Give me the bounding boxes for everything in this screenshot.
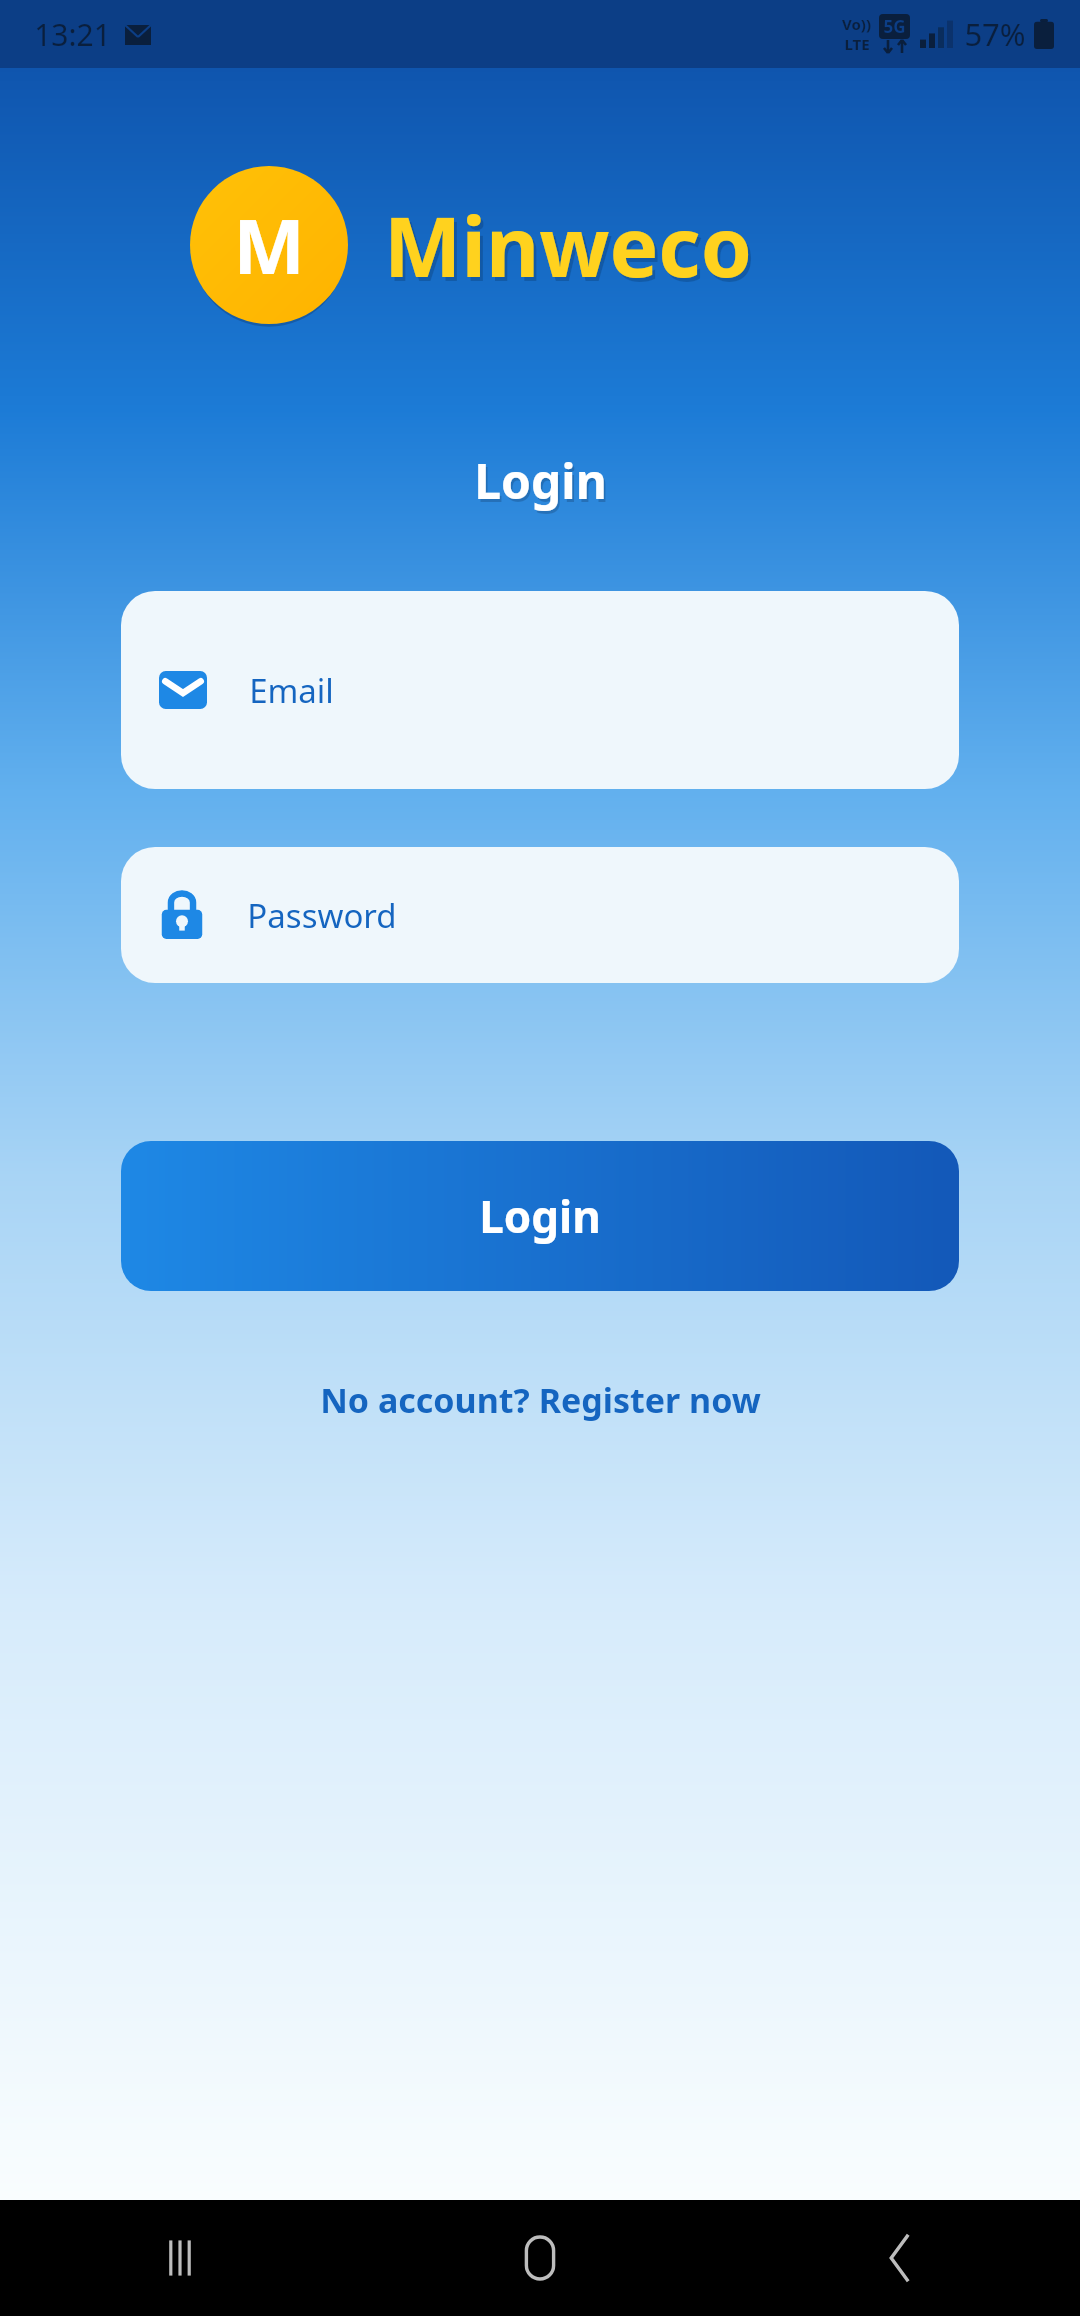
button[interactable]: Email <box>121 591 959 789</box>
staticText: Password <box>247 893 397 938</box>
button[interactable]: No account? Register now <box>302 1367 779 1433</box>
staticText: 13:21 <box>34 14 111 55</box>
staticText: 5G <box>883 15 906 38</box>
button[interactable]: Recent apps <box>0 2200 360 2316</box>
staticText: Minweco <box>387 193 755 305</box>
staticText: Email <box>249 668 334 713</box>
staticText: Minweco <box>384 189 752 301</box>
staticText: Login <box>476 451 609 516</box>
staticText: LTE <box>844 34 870 54</box>
staticText: M <box>233 193 305 297</box>
button[interactable]: Back <box>720 2200 1080 2316</box>
staticText: Login <box>474 448 607 513</box>
button[interactable]: Home <box>360 2200 720 2316</box>
staticText: No account? Register now <box>320 1377 761 1423</box>
staticText: Vo)) <box>842 14 871 34</box>
button[interactable]: Password <box>121 847 959 983</box>
button[interactable]: Login <box>121 1141 959 1291</box>
staticText: Login <box>479 1186 601 1246</box>
staticText: 57% <box>964 13 1026 55</box>
